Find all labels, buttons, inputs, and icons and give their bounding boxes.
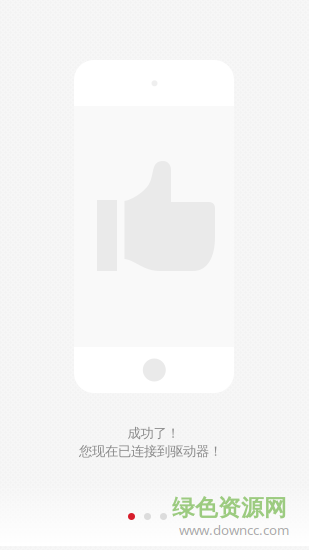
staticText: www.downcc.com [179, 521, 289, 539]
button[interactable]: Page 2 [144, 513, 151, 520]
button[interactable]: Page 1 [128, 513, 135, 520]
button[interactable]: Page 3 [160, 513, 167, 520]
staticText: 您现在已连接到驱动器！ [79, 443, 222, 459]
staticText: 绿色资源网 [172, 494, 287, 522]
staticText: 成功了！ [127, 425, 179, 441]
